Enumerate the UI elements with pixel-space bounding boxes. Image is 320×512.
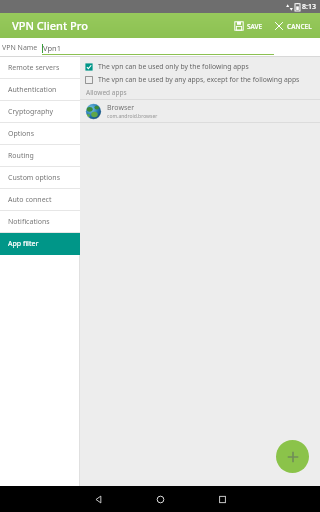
button[interactable]: Notifications: [0, 211, 80, 233]
button[interactable]: Auto connect: [0, 189, 80, 211]
staticText: The vpn can be used by any apps, except …: [98, 75, 300, 84]
button[interactable]: Browser: [80, 100, 320, 122]
staticText: Vpn1: [43, 43, 61, 53]
button[interactable]: The vpn can be used only by the followin…: [80, 60, 320, 73]
button[interactable]: App filter: [0, 233, 80, 255]
button[interactable]: Save: [232, 19, 265, 33]
staticText: Cryptography: [8, 107, 54, 117]
button[interactable]: Remote servers: [0, 57, 80, 79]
button[interactable]: Vpn1: [42, 41, 274, 55]
staticText: Remote servers: [8, 63, 60, 73]
staticText: SAVE: [247, 22, 263, 31]
staticText: 8:13: [302, 2, 316, 12]
staticText: VPN Name: [2, 43, 38, 53]
staticText: Custom options: [8, 173, 61, 183]
button[interactable]: Add app: [276, 440, 309, 473]
staticText: com.android.browser: [107, 113, 158, 120]
button[interactable]: Routing: [0, 145, 80, 167]
staticText: Allowed apps: [86, 88, 127, 97]
button[interactable]: Back: [67, 486, 129, 512]
button[interactable]: Cancel: [272, 19, 314, 33]
button[interactable]: Recent apps: [191, 486, 253, 512]
button[interactable]: The vpn can be used by any apps, except …: [80, 73, 320, 86]
staticText: Notifications: [8, 217, 50, 227]
button[interactable]: Cryptography: [0, 101, 80, 123]
staticText: App filter: [8, 239, 39, 249]
staticText: Authentication: [8, 85, 57, 95]
staticText: The vpn can be used only by the followin…: [98, 62, 249, 71]
button[interactable]: Authentication: [0, 79, 80, 101]
staticText: Routing: [8, 151, 34, 161]
button[interactable]: Custom options: [0, 167, 80, 189]
button[interactable]: Home: [129, 486, 191, 512]
staticText: Options: [8, 129, 35, 139]
staticText: Browser: [107, 103, 135, 113]
staticText: VPN Client Pro: [12, 18, 88, 33]
button[interactable]: Options: [0, 123, 80, 145]
staticText: CANCEL: [287, 22, 312, 31]
staticText: Auto connect: [8, 195, 52, 205]
